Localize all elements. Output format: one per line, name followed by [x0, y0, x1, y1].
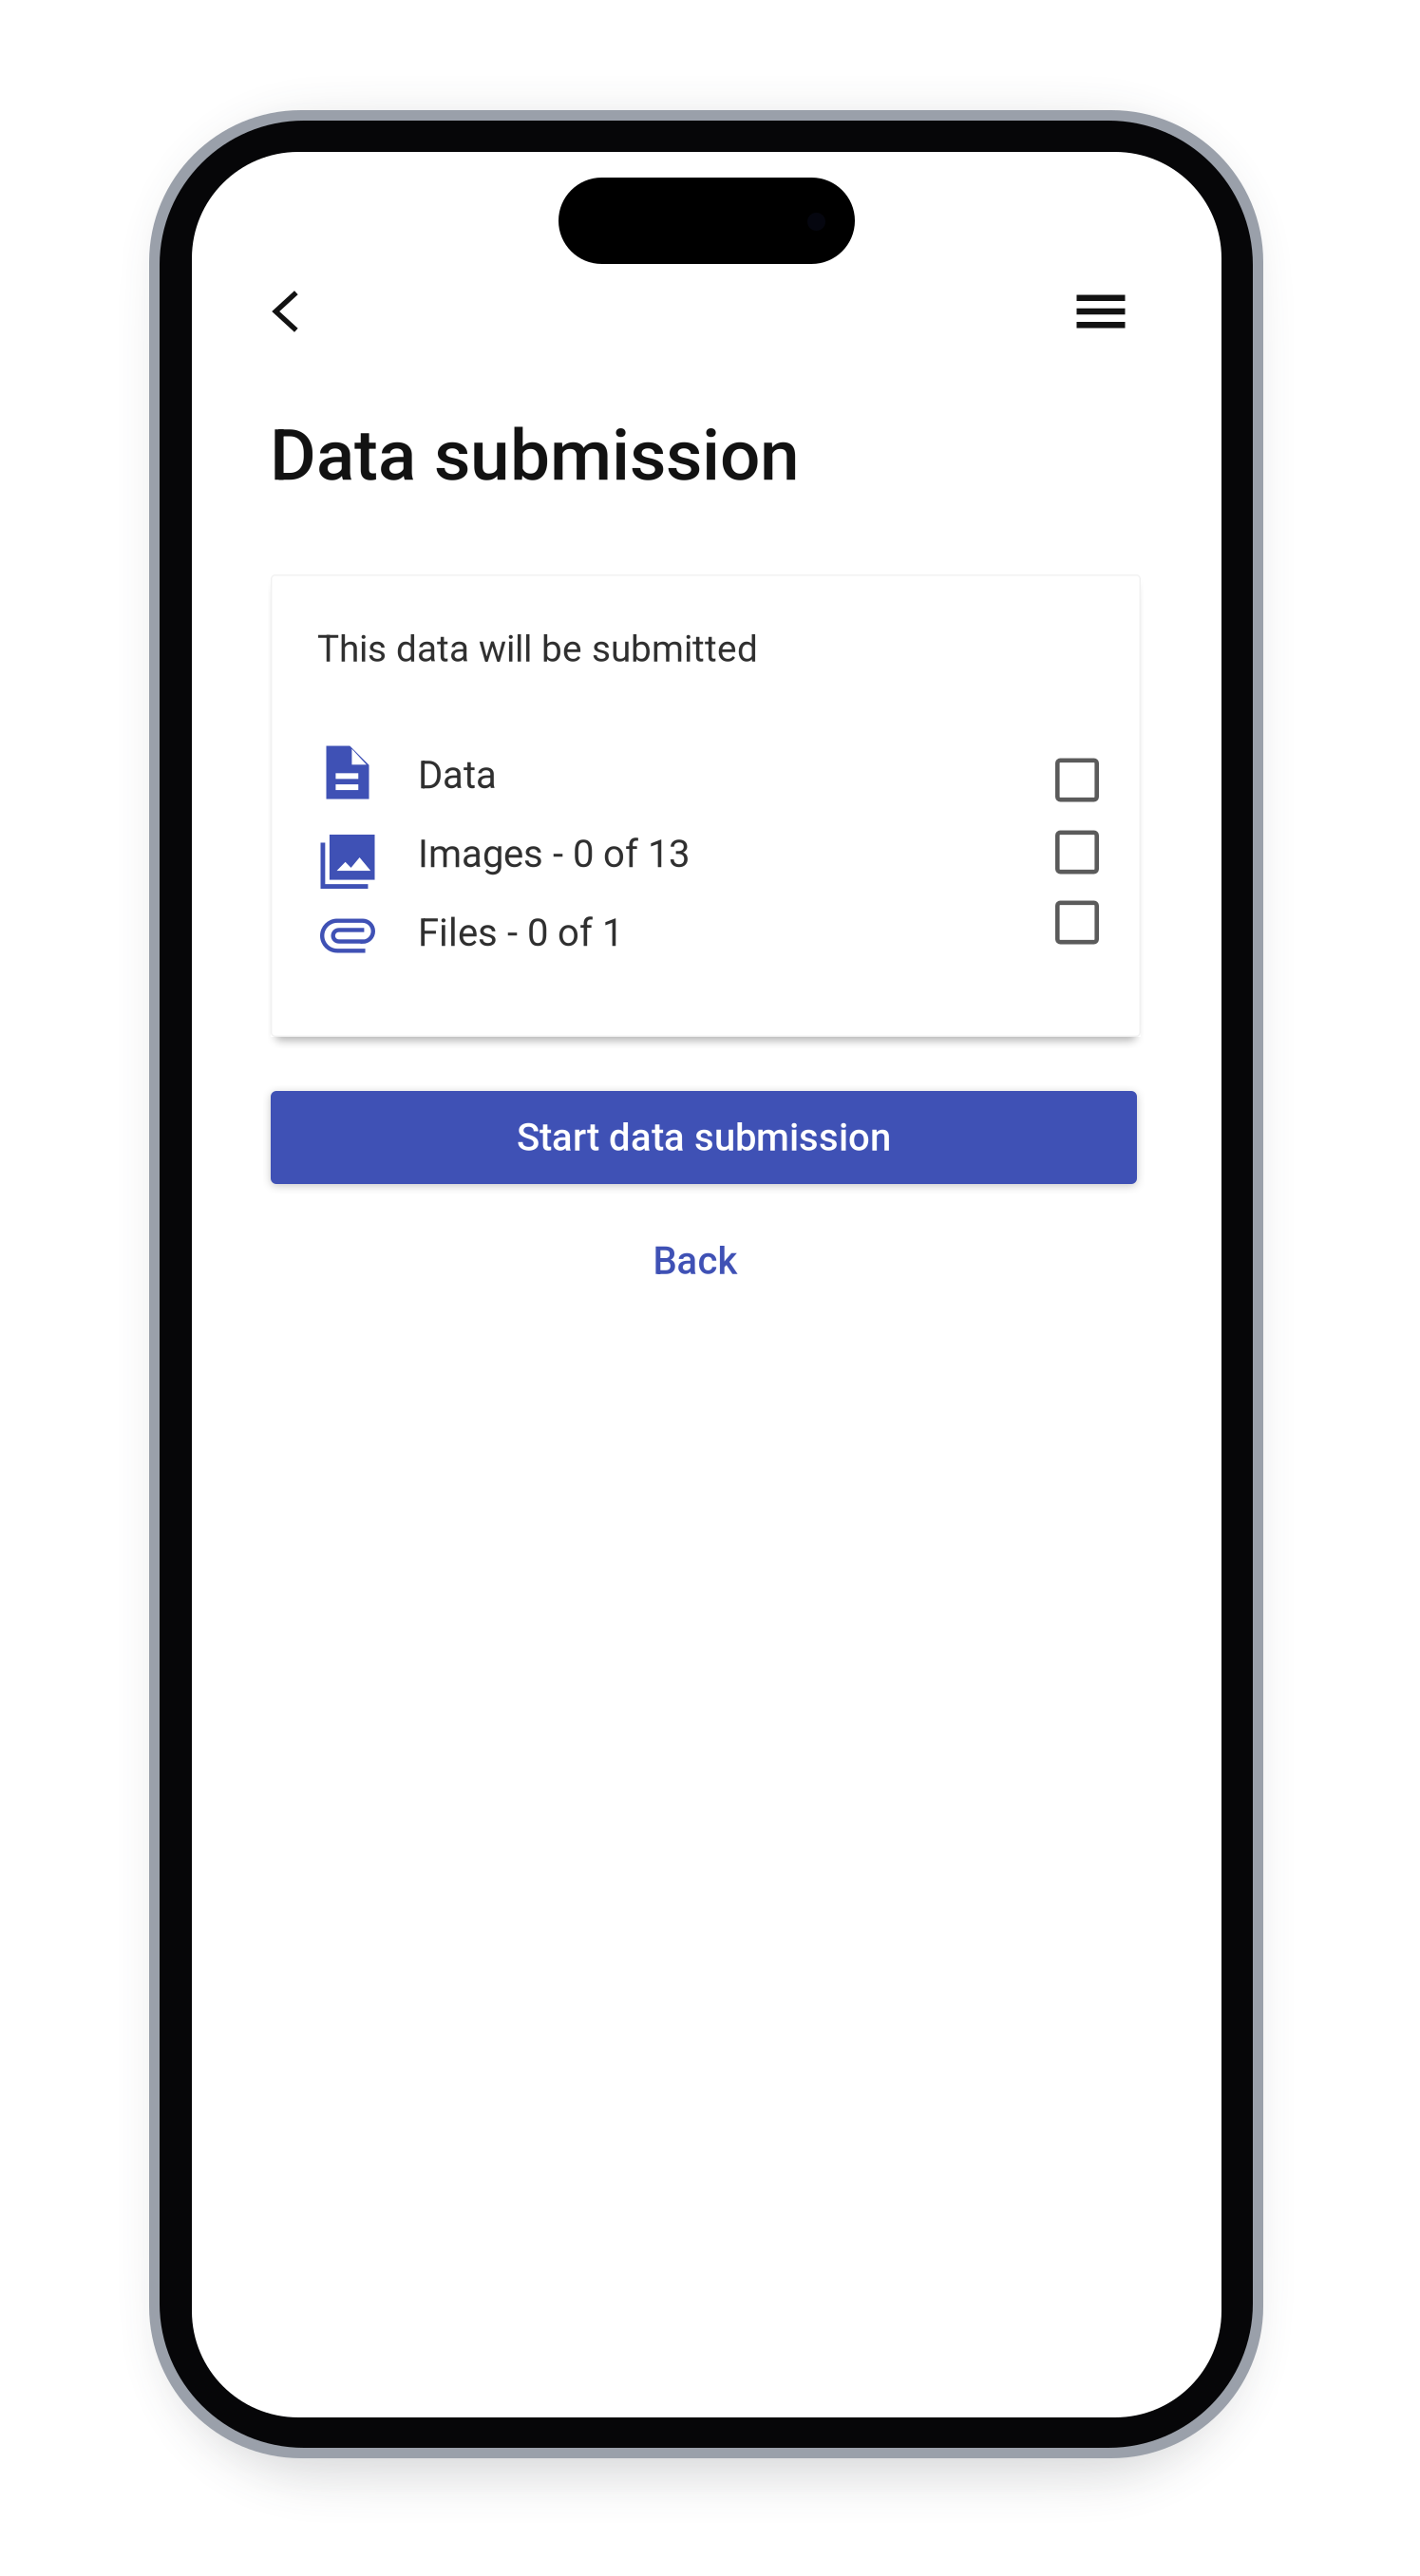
staticText: This data will be submitted — [317, 628, 758, 671]
button[interactable]: Menu — [1061, 272, 1141, 351]
button[interactable]: Back — [271, 1220, 1120, 1302]
button[interactable]: Files - 0 of 1 — [318, 893, 1105, 972]
button[interactable]: Back — [246, 272, 326, 351]
staticText: Start data submission — [517, 1115, 891, 1160]
staticText: Images - 0 of 13 — [418, 832, 690, 876]
staticText: Back — [653, 1239, 738, 1283]
button[interactable]: Images - 0 of 13 — [318, 815, 1105, 893]
button[interactable]: Start data submission — [271, 1091, 1137, 1184]
staticText: Data — [418, 753, 497, 798]
staticText: Data submission — [270, 414, 800, 497]
staticText: Files - 0 of 1 — [418, 911, 623, 955]
button[interactable]: Data — [318, 736, 1105, 815]
